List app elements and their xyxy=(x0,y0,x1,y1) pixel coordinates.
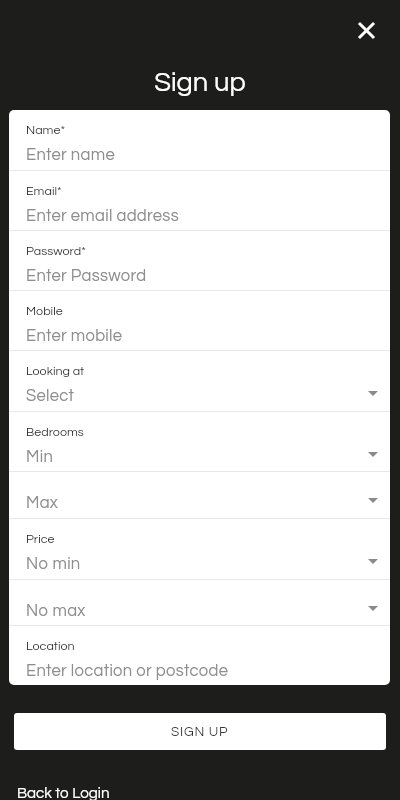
staticText: Sign up xyxy=(154,69,246,97)
staticText: Bedrooms xyxy=(26,426,84,439)
staticText: Location xyxy=(26,640,75,653)
button[interactable]: Password* xyxy=(9,231,390,291)
button[interactable]: Email* xyxy=(9,171,390,231)
staticText: No min xyxy=(26,555,81,572)
staticText: Enter name xyxy=(26,146,115,163)
staticText: Email* xyxy=(26,185,62,198)
button[interactable]: Max xyxy=(9,472,390,519)
button[interactable]: Back to Login xyxy=(17,786,110,800)
staticText: SIGN UP xyxy=(171,725,229,739)
button[interactable]: Price xyxy=(9,519,390,580)
button[interactable]: Mobile xyxy=(9,291,390,351)
staticText: Enter email address xyxy=(26,207,179,224)
button[interactable]: Looking at xyxy=(9,351,390,412)
staticText: Password* xyxy=(26,245,86,258)
button[interactable]: SIGN UP xyxy=(14,713,386,750)
staticText: Enter Password xyxy=(26,267,147,284)
staticText: Back to Login xyxy=(17,786,110,800)
staticText: Enter location or postcode xyxy=(26,662,229,679)
staticText: Min xyxy=(26,448,54,465)
staticText: Name* xyxy=(26,124,66,137)
button[interactable]: Close xyxy=(346,10,386,50)
staticText: Price xyxy=(26,533,55,546)
button[interactable]: Bedrooms xyxy=(9,412,390,472)
staticText: Max xyxy=(26,494,59,511)
staticText: Enter mobile xyxy=(26,327,123,344)
staticText: Select xyxy=(26,387,75,404)
staticText: Looking at xyxy=(26,365,85,378)
button[interactable]: Name* xyxy=(9,110,390,171)
staticText: Mobile xyxy=(26,305,63,318)
staticText: No max xyxy=(26,602,86,619)
button[interactable]: No max xyxy=(9,580,390,626)
button[interactable]: Location xyxy=(9,626,390,685)
